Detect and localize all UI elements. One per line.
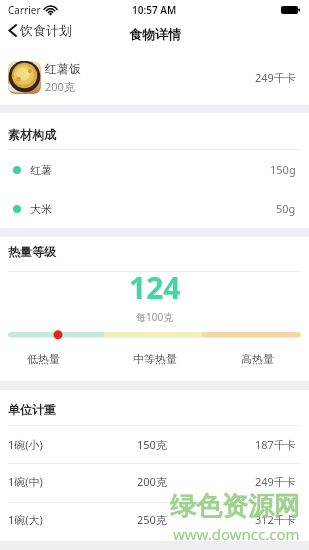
button[interactable]: 红薯 (0, 150, 309, 189)
button[interactable]: 1碗(大) (0, 503, 309, 541)
staticText: 单位计重 (8, 402, 56, 417)
button[interactable]: 大米 (0, 189, 309, 228)
staticText: 150克 (137, 437, 167, 452)
button[interactable]: 1碗(小) (0, 426, 309, 463)
staticText: 249千卡 (255, 474, 296, 489)
staticText: 312千卡 (255, 512, 296, 527)
staticText: 1碗(大) (8, 512, 43, 527)
staticText: 249千卡 (255, 70, 296, 85)
staticText: 素材构成 (8, 127, 56, 142)
button[interactable]: 1碗(中) (0, 464, 309, 502)
staticText: 50g (276, 201, 296, 216)
button[interactable]: 饮食计划 (8, 22, 72, 38)
staticText: 1碗(小) (8, 437, 43, 452)
staticText: Carrier (8, 3, 41, 17)
staticText: 红薯 (30, 163, 52, 177)
staticText: 150g (270, 162, 296, 177)
staticText: 饮食计划 (20, 22, 72, 38)
staticText: 绿色资源网 (170, 490, 300, 523)
staticText: 187千卡 (255, 437, 296, 452)
staticText: 200克 (45, 79, 75, 94)
staticText: 124 (129, 267, 181, 308)
button[interactable]: 红薯饭 (0, 50, 309, 105)
staticText: 红薯饭 (45, 61, 81, 76)
staticText: 250克 (137, 512, 167, 527)
staticText: 低热量 (27, 352, 60, 366)
staticText: 中等热量 (133, 352, 177, 366)
staticText: 食物详情 (129, 26, 181, 42)
staticText: 高热量 (241, 352, 274, 366)
staticText: 热量等级 (8, 244, 56, 259)
staticText: 每100克 (136, 310, 174, 324)
staticText: 1碗(中) (8, 474, 43, 489)
staticText: www.downcc.com (173, 524, 300, 544)
staticText: 200克 (137, 474, 167, 489)
staticText: 10:57 AM (132, 3, 177, 17)
staticText: 大米 (30, 202, 52, 216)
